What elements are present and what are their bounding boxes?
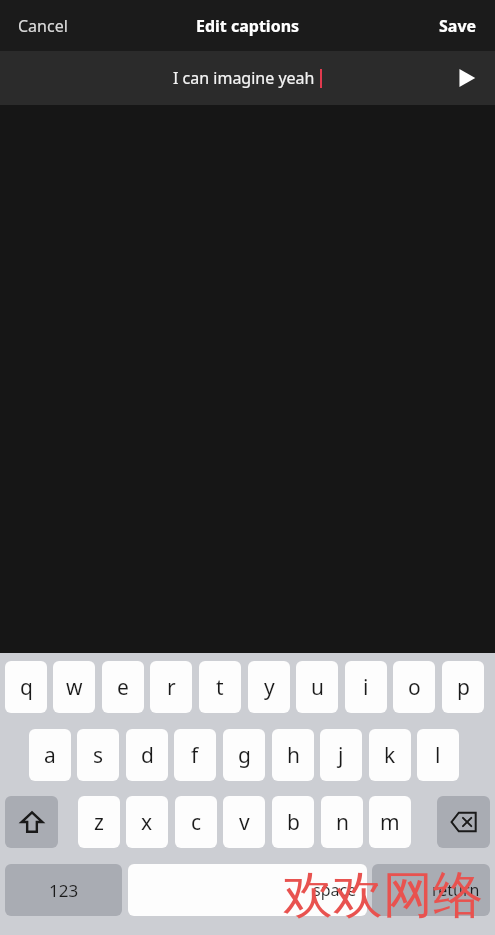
staticText: space	[313, 879, 357, 901]
staticText: 欢欢网络	[283, 864, 483, 927]
staticText: m	[380, 808, 400, 837]
staticText: e	[117, 673, 129, 702]
button[interactable]: I can imagine yeah	[0, 51, 495, 105]
button[interactable]: w	[53, 661, 95, 713]
button[interactable]: m	[369, 796, 411, 848]
staticText: l	[435, 741, 441, 770]
button[interactable]: i	[345, 661, 387, 713]
button[interactable]: l	[417, 729, 459, 781]
staticText: j	[338, 741, 344, 770]
staticText: Cancel	[18, 15, 68, 37]
staticText: o	[408, 673, 421, 702]
button[interactable]: space	[128, 864, 367, 916]
button[interactable]: z	[78, 796, 120, 848]
button[interactable]: return	[372, 864, 490, 916]
staticText: y	[264, 673, 275, 702]
button[interactable]: n	[321, 796, 363, 848]
button[interactable]: a	[29, 729, 71, 781]
button[interactable]: y	[248, 661, 290, 713]
button[interactable]: q	[5, 661, 47, 713]
button[interactable]: Play caption	[449, 60, 485, 96]
button[interactable]: j	[320, 729, 362, 781]
button[interactable]: o	[393, 661, 435, 713]
staticText: c	[191, 808, 202, 837]
staticText: return	[432, 879, 480, 901]
button[interactable]: 123	[5, 864, 122, 916]
button[interactable]: x	[126, 796, 168, 848]
button[interactable]: p	[442, 661, 484, 713]
staticText: u	[311, 673, 324, 702]
staticText: k	[384, 741, 396, 770]
staticText: w	[66, 673, 83, 702]
staticText: r	[167, 673, 176, 702]
staticText: q	[20, 673, 33, 702]
button[interactable]: s	[77, 729, 119, 781]
button[interactable]: f	[174, 729, 216, 781]
button[interactable]: t	[199, 661, 241, 713]
staticText: 123	[49, 879, 79, 902]
button[interactable]: h	[272, 729, 314, 781]
staticText: h	[287, 741, 300, 770]
staticText: n	[336, 808, 349, 837]
button[interactable]: e	[102, 661, 144, 713]
button[interactable]: r	[150, 661, 192, 713]
button[interactable]: k	[369, 729, 411, 781]
staticText: Edit captions	[196, 15, 300, 37]
button[interactable]: d	[126, 729, 168, 781]
staticText: s	[93, 741, 104, 770]
staticText: f	[191, 741, 199, 770]
staticText: d	[141, 741, 154, 770]
button[interactable]: Cancel	[8, 7, 78, 45]
staticText: p	[457, 673, 470, 702]
staticText: i	[363, 673, 369, 702]
button[interactable]: v	[223, 796, 265, 848]
button[interactable]: c	[175, 796, 217, 848]
staticText: t	[216, 673, 224, 702]
staticText: b	[287, 808, 300, 837]
staticText: a	[44, 741, 56, 770]
staticText: z	[94, 808, 104, 837]
staticText: g	[238, 741, 251, 770]
button[interactable]: Backspace	[437, 796, 490, 848]
button[interactable]: b	[272, 796, 314, 848]
staticText: v	[239, 808, 250, 837]
staticText: I can imagine yeah	[173, 67, 315, 89]
button[interactable]: Shift	[5, 796, 58, 848]
button[interactable]: u	[296, 661, 338, 713]
staticText: Save	[439, 15, 477, 37]
button[interactable]: g	[223, 729, 265, 781]
button[interactable]: Save	[429, 7, 487, 45]
staticText: x	[141, 808, 153, 837]
